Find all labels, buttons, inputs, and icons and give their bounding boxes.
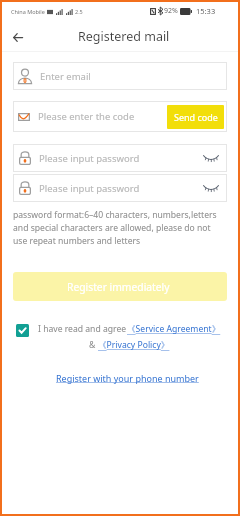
- staticText: Register immediately: [67, 280, 170, 294]
- staticText: Please input password: [39, 152, 140, 165]
- button[interactable]: Register with your phone number: [56, 372, 199, 384]
- button[interactable]: Show password: [203, 150, 219, 166]
- button[interactable]: Show password: [203, 180, 219, 196]
- staticText: Registered mail: [78, 28, 170, 45]
- staticText: Send code: [174, 111, 218, 123]
- staticText: 15:33: [196, 6, 216, 16]
- button[interactable]: 《Service Agreement》: [127, 323, 223, 335]
- button[interactable]: 《Privacy Policy》: [98, 339, 172, 351]
- staticText: Please enter the code: [38, 110, 135, 123]
- button[interactable]: Register immediately: [13, 272, 227, 301]
- button[interactable]: Back: [7, 26, 29, 48]
- button[interactable]: Agree to terms: [16, 324, 29, 337]
- button[interactable]: Send code: [167, 105, 224, 129]
- staticText: 92%: [164, 6, 178, 16]
- staticText: I have read and agree: [38, 323, 127, 335]
- button[interactable]: Please input password: [13, 144, 227, 172]
- staticText: Please input password: [39, 182, 140, 195]
- staticText: &: [89, 339, 98, 351]
- staticText: password format:6–40 characters, numbers…: [13, 209, 227, 247]
- staticText: 2.5: [75, 8, 83, 15]
- button[interactable]: Please input password: [13, 174, 227, 202]
- button[interactable]: Enter email: [13, 62, 227, 90]
- staticText: Enter email: [40, 70, 91, 83]
- staticText: China Mobile: [11, 8, 45, 15]
